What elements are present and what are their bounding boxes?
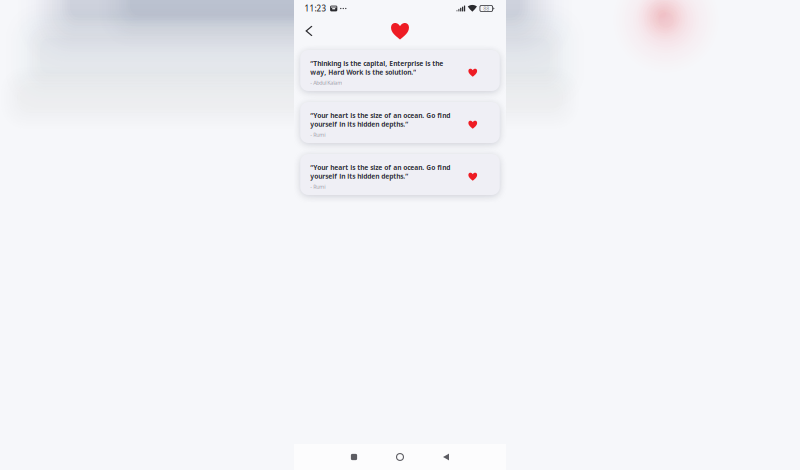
button[interactable]: Back [433, 444, 459, 470]
staticText: “Your heart is the size of an ocean. Go … [310, 111, 450, 129]
staticText: “Your heart is the size of an ocean. Go … [310, 163, 450, 181]
button[interactable]: Recent apps [341, 444, 367, 470]
button[interactable]: Back [298, 20, 320, 42]
staticText: 11:23 [304, 3, 326, 14]
staticText: “Thinking is the capital, Enterprise is … [310, 59, 443, 77]
staticText: - Abdul Kalam [310, 79, 342, 86]
staticText: - Rumi [310, 131, 325, 138]
button[interactable]: Favourites [386, 19, 414, 43]
button[interactable]: “Thinking is the capital, Enterprise is … [300, 50, 500, 91]
button[interactable]: “Your heart is the size of an ocean. Go … [300, 154, 500, 195]
staticText: - Rumi [310, 183, 325, 190]
button[interactable]: “Your heart is the size of an ocean. Go … [300, 102, 500, 143]
button[interactable]: Home [387, 444, 413, 470]
staticText: 88 [483, 5, 489, 12]
